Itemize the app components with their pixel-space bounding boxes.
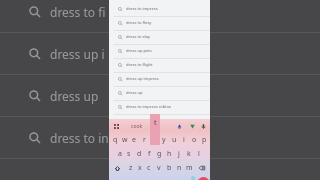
button[interactable]: cook xyxy=(129,121,145,132)
button[interactable]: y xyxy=(159,133,169,147)
button[interactable]: Voice input xyxy=(200,123,207,130)
staticText: r xyxy=(143,135,146,145)
button[interactable]: e xyxy=(129,133,139,147)
button[interactable]: dress to slay xyxy=(109,31,210,45)
staticText: o xyxy=(192,135,197,145)
staticText: g xyxy=(157,149,162,159)
button[interactable]: m xyxy=(184,161,194,175)
staticText: dress to flexy xyxy=(126,20,152,26)
staticText: y xyxy=(162,135,166,145)
staticText: p xyxy=(202,135,207,145)
staticText: e xyxy=(132,135,136,145)
button[interactable]: t xyxy=(149,133,159,147)
button[interactable]: Keyboard menu xyxy=(112,122,120,130)
staticText: d xyxy=(137,149,142,159)
button[interactable]: b xyxy=(164,161,174,175)
staticText: t xyxy=(154,118,157,128)
button[interactable]: z xyxy=(126,161,135,175)
staticText: dress up i xyxy=(50,46,105,62)
button[interactable]: dress to impress roblox xyxy=(109,101,210,115)
staticText: dress to impress xyxy=(126,6,158,12)
button[interactable]: dress to fi xyxy=(0,0,320,33)
button[interactable]: dress up pets xyxy=(109,45,210,59)
button[interactable]: Search xyxy=(197,177,210,180)
button[interactable]: o xyxy=(189,133,199,147)
staticText: b xyxy=(167,163,172,173)
staticText: dress up xyxy=(126,90,143,96)
button[interactable]: GIF xyxy=(189,123,196,130)
button[interactable]: p xyxy=(199,133,209,147)
staticText: j xyxy=(178,149,180,159)
button[interactable]: i xyxy=(179,133,189,147)
button[interactable]: w xyxy=(120,133,129,147)
staticText: a xyxy=(118,149,122,159)
button[interactable]: dress up xyxy=(0,75,320,117)
staticText: dress to fi xyxy=(50,4,106,20)
staticText: f xyxy=(148,149,151,159)
staticText: z xyxy=(129,163,133,173)
staticText: l xyxy=(198,149,200,159)
staticText: q xyxy=(113,135,118,145)
staticText: dress to flight xyxy=(126,62,153,68)
button[interactable]: c xyxy=(144,161,154,175)
staticText: cook xyxy=(131,123,143,130)
staticText: i xyxy=(183,135,185,145)
staticText: w xyxy=(122,135,128,145)
staticText: v xyxy=(157,163,161,173)
button[interactable]: d xyxy=(134,147,144,161)
button[interactable]: dress up xyxy=(109,87,210,101)
staticText: c xyxy=(147,163,151,173)
button[interactable]: q xyxy=(111,133,120,147)
button[interactable]: dress to impress xyxy=(109,3,210,17)
button[interactable]: Shift xyxy=(109,161,126,175)
staticText: h xyxy=(167,149,172,159)
button[interactable]: g xyxy=(154,147,164,161)
button[interactable]: dress to in xyxy=(0,117,320,159)
staticText: dress to slay xyxy=(126,34,150,40)
button[interactable]: Backspace xyxy=(194,161,210,175)
button[interactable]: u xyxy=(169,133,179,147)
button[interactable]: v xyxy=(154,161,164,175)
button[interactable]: f xyxy=(144,147,154,161)
button[interactable]: x xyxy=(135,161,144,175)
staticText: m xyxy=(186,163,193,173)
button[interactable]: dress up i xyxy=(0,33,320,75)
staticText: k xyxy=(187,149,191,159)
staticText: dress to in xyxy=(50,130,109,146)
staticText: dress up pets xyxy=(126,48,152,54)
button[interactable]: j xyxy=(174,147,184,161)
staticText: x xyxy=(138,163,142,173)
button[interactable]: s xyxy=(124,147,134,161)
staticText: dress up xyxy=(50,88,99,104)
button[interactable]: n xyxy=(174,161,184,175)
staticText: dress up impress xyxy=(126,76,159,82)
button[interactable]: h xyxy=(164,147,174,161)
button[interactable]: k xyxy=(184,147,194,161)
button[interactable]: r xyxy=(139,133,149,147)
staticText: n xyxy=(177,163,182,173)
staticText: dress to imp xyxy=(126,118,150,124)
staticText: u xyxy=(172,135,177,145)
button[interactable]: Stickers xyxy=(176,123,183,130)
button[interactable]: dress to imp xyxy=(109,115,210,129)
button[interactable]: dress up impress xyxy=(109,73,210,87)
button[interactable]: dress to flight xyxy=(109,59,210,73)
button[interactable]: l xyxy=(194,147,204,161)
button[interactable]: dress to flexy xyxy=(109,17,210,31)
staticText: dress to impress roblox xyxy=(126,104,171,110)
staticText: s xyxy=(127,149,131,159)
button[interactable]: a xyxy=(115,147,124,161)
